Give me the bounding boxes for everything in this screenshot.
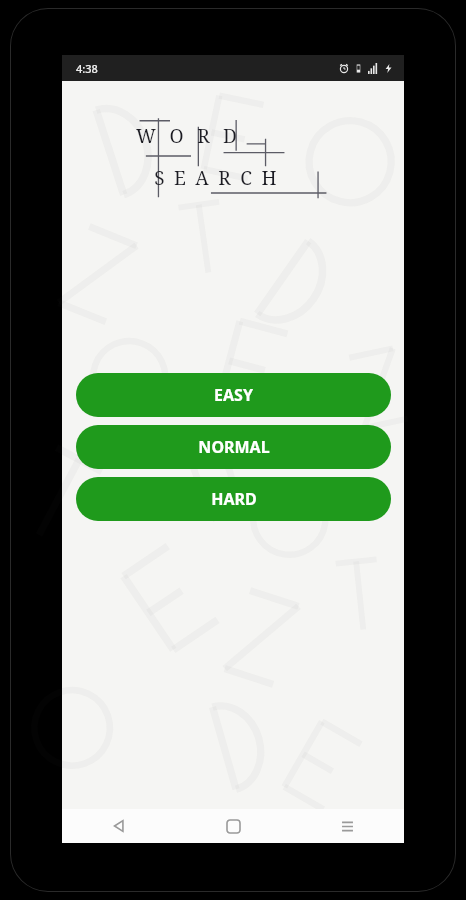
staticText: D <box>223 123 237 149</box>
staticText: C <box>240 165 252 191</box>
button[interactable]: Recent apps <box>290 809 404 843</box>
staticText: HARD <box>211 488 257 510</box>
staticText: NORMAL <box>198 436 270 458</box>
staticText: 4:38 <box>76 61 98 76</box>
staticText: E <box>174 165 186 191</box>
button[interactable]: Back <box>62 809 176 843</box>
staticText: H <box>261 165 277 191</box>
staticText: A <box>195 165 209 191</box>
staticText: EASY <box>214 384 253 406</box>
staticText: R <box>197 123 210 149</box>
staticText: W <box>136 123 156 149</box>
staticText: O <box>169 123 184 149</box>
staticText: S <box>154 165 165 191</box>
staticText: R <box>218 165 231 191</box>
button[interactable]: Home <box>176 809 290 843</box>
button[interactable]: HARD <box>76 477 391 521</box>
button[interactable]: EASY <box>76 373 391 417</box>
button[interactable]: NORMAL <box>76 425 391 469</box>
